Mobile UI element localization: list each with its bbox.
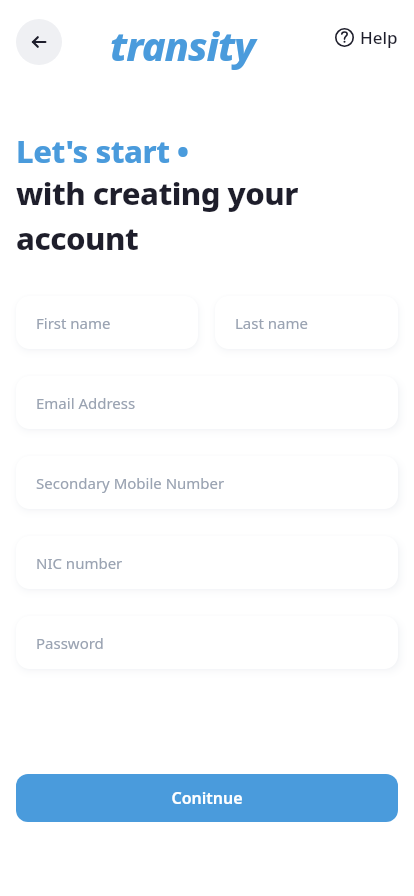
button[interactable]: Email Address — [16, 376, 398, 429]
staticText: transity — [110, 18, 255, 72]
staticText: Help — [360, 26, 398, 49]
button[interactable]: Password — [16, 616, 398, 669]
staticText: Last name — [235, 313, 308, 333]
staticText: Email Address — [36, 393, 136, 413]
button[interactable]: NIC number — [16, 536, 398, 589]
staticText: Let's start • — [16, 130, 189, 172]
button[interactable]: Help — [335, 26, 398, 49]
button[interactable]: Back — [16, 19, 62, 65]
button[interactable]: Secondary Mobile Number — [16, 456, 398, 509]
button[interactable]: Last name — [215, 296, 398, 349]
staticText: First name — [36, 313, 111, 333]
staticText: Secondary Mobile Number — [36, 473, 225, 493]
staticText: Password — [36, 633, 104, 653]
staticText: Conitnue — [171, 787, 243, 809]
button[interactable]: Conitnue — [16, 774, 398, 822]
staticText: with creating your account — [16, 172, 398, 259]
button[interactable]: First name — [16, 296, 198, 349]
staticText: NIC number — [36, 553, 123, 573]
